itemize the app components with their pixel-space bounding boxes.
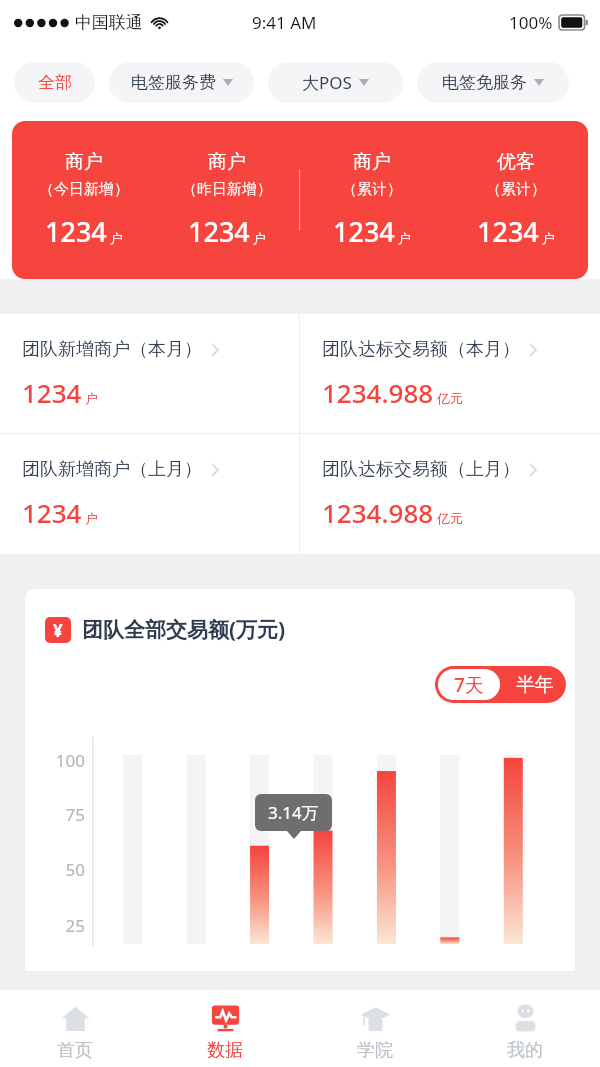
button[interactable]: 数据 [150,990,300,1067]
staticText: 我的 [507,1039,543,1062]
staticText: 团队新增商户（上月） [22,458,202,481]
button[interactable]: 学院 [300,990,450,1067]
staticText: 中国联通 [75,12,143,33]
other: 学院 [360,1003,391,1034]
staticText: 75 [47,803,85,826]
staticText: 1234 [22,375,82,410]
staticText: 1234 [22,495,82,530]
button[interactable]: 团队达标交易额（上月） [300,434,537,554]
staticText: 商户 [208,150,246,174]
staticText: 团队新增商户（本月） [22,338,202,361]
staticText: 户 [253,230,266,246]
button[interactable]: 商户 [12,121,588,279]
staticText: 1234.988 [322,495,434,530]
staticText: 25 [47,914,85,937]
staticText: 3.14万 [268,801,319,824]
button[interactable]: 团队新增商户（本月） [0,314,219,433]
staticText: 户 [542,230,555,246]
staticText: ¥ [53,619,63,642]
staticText: 团队达标交易额（上月） [322,458,520,481]
button[interactable]: 大POS [268,62,403,103]
staticText: 100% [509,11,553,34]
staticText: 全部 [38,72,72,93]
staticText: 电签免服务 [442,72,527,93]
button[interactable]: 全部 [14,62,95,103]
staticText: 亿元 [437,390,463,406]
staticText: （累计） [486,180,546,199]
staticText: 户 [85,510,98,526]
staticText: 100 [47,749,85,772]
staticText: （昨日新增） [182,180,272,199]
button[interactable]: 7天 [435,666,566,703]
staticText: 优客 [497,150,535,174]
button[interactable]: 电签服务费 [109,62,254,103]
staticText: 户 [85,390,98,406]
staticText: 1234 [333,213,395,250]
other: 首页 [60,1003,91,1034]
staticText: 7天 [454,672,484,698]
staticText: 户 [398,230,411,246]
button[interactable]: 团队达标交易额（本月） [300,314,537,433]
staticText: 商户 [65,150,103,174]
staticText: 9:41 AM [252,11,317,34]
button[interactable]: 首页 [0,990,150,1067]
button[interactable]: 电签免服务 [417,62,569,103]
staticText: 1234 [45,213,107,250]
staticText: 1234 [477,213,539,250]
staticText: （累计） [342,180,402,199]
staticText: 团队达标交易额（本月） [322,338,520,361]
staticText: 商户 [353,150,391,174]
staticText: （今日新增） [39,180,129,199]
other: 我的 [510,1003,541,1034]
staticText: 50 [47,858,85,881]
button[interactable]: 团队新增商户（上月） [0,434,219,554]
staticText: 1234 [188,213,250,250]
staticText: 户 [110,230,123,246]
staticText: 团队全部交易额(万元) [82,615,286,644]
staticText: 首页 [57,1039,93,1062]
staticText: 学院 [357,1039,393,1062]
staticText: 半年 [516,673,554,697]
staticText: 大POS [302,71,352,94]
button[interactable]: 我的 [450,990,600,1067]
staticText: 数据 [207,1039,243,1062]
other: 数据 [210,1003,241,1034]
staticText: 电签服务费 [131,72,216,93]
staticText: 亿元 [437,510,463,526]
staticText: 1234.988 [322,375,434,410]
